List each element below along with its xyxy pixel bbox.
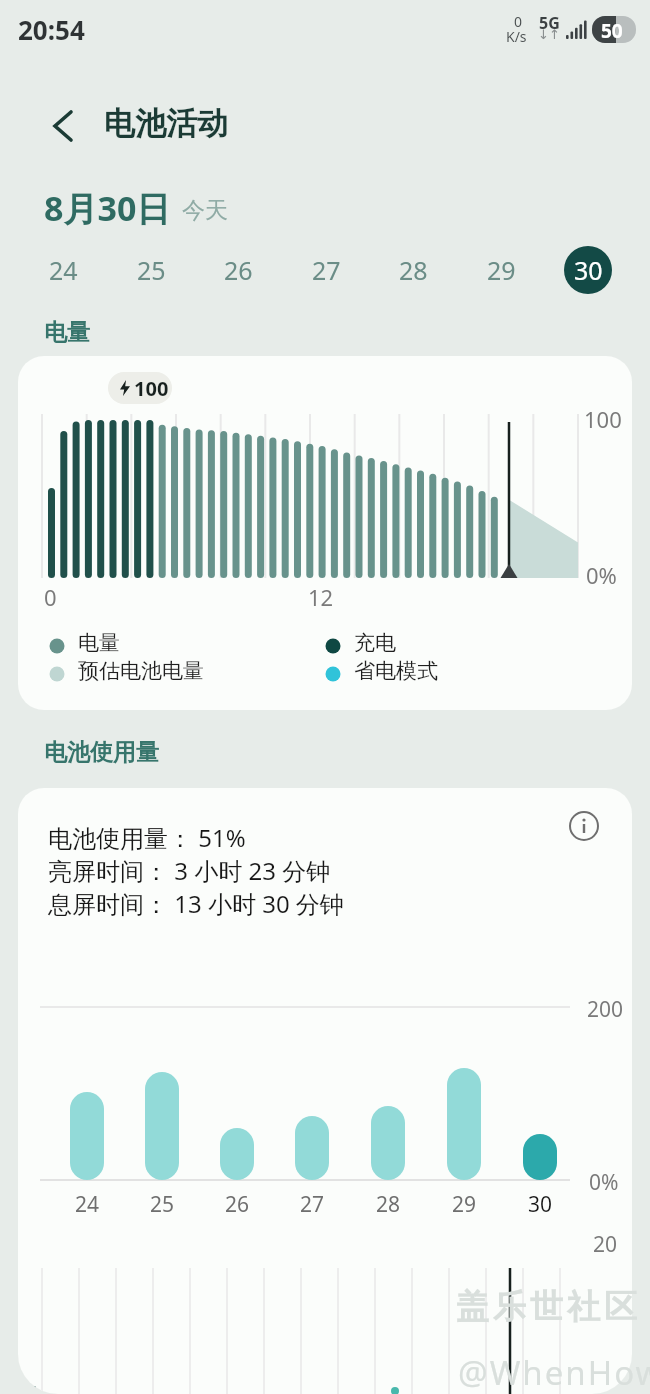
- button[interactable]: 29: [477, 246, 525, 294]
- staticText: 电池活动: [104, 104, 228, 143]
- staticText: 25: [150, 1190, 175, 1219]
- staticText: 24: [75, 1190, 100, 1219]
- staticText: 27: [312, 253, 341, 287]
- staticText: 亮屏时间： 3 小时 23 分钟: [48, 854, 331, 887]
- staticText: 电量: [44, 318, 90, 347]
- staticText: 27: [300, 1190, 325, 1219]
- button[interactable]: 27: [302, 246, 350, 294]
- staticText: 30: [574, 253, 603, 287]
- staticText: 电量: [78, 630, 120, 656]
- staticText: K/s: [506, 27, 527, 46]
- staticText: 25: [137, 253, 166, 287]
- button[interactable]: 28: [389, 246, 437, 294]
- staticText: 26: [224, 253, 253, 287]
- staticText: 息屏时间： 13 小时 30 分钟: [48, 887, 344, 920]
- staticText: 0: [44, 582, 57, 612]
- staticText: 24: [49, 253, 78, 287]
- button[interactable]: 24: [39, 246, 87, 294]
- staticText: 29: [452, 1190, 477, 1219]
- staticText: 20:54: [18, 12, 85, 47]
- staticText: 50: [601, 18, 623, 43]
- staticText: 0: [514, 12, 523, 31]
- staticText: 12: [308, 582, 334, 612]
- staticText: 预估电池电量: [78, 658, 204, 684]
- staticText: 今天: [182, 196, 228, 225]
- button[interactable]: 30: [564, 246, 612, 294]
- staticText: 28: [376, 1190, 401, 1219]
- staticText: 8月30日: [44, 185, 171, 231]
- staticText: ↓↑: [538, 27, 560, 42]
- button[interactable]: 26: [214, 246, 262, 294]
- button[interactable]: [36, 100, 88, 152]
- staticText: 盖乐世社区: [454, 1286, 639, 1328]
- staticText: 0%: [589, 1168, 619, 1197]
- staticText: 26: [225, 1190, 250, 1219]
- staticText: 200: [587, 995, 624, 1024]
- staticText: 20: [593, 1230, 618, 1259]
- staticText: 电池使用量： 51%: [48, 821, 246, 854]
- staticText: 省电模式: [354, 658, 438, 684]
- button[interactable]: 25: [127, 246, 175, 294]
- staticText: 100: [134, 375, 169, 402]
- staticText: 0%: [586, 560, 617, 590]
- staticText: 5G: [539, 12, 560, 34]
- staticText: 29: [487, 253, 516, 287]
- button[interactable]: [562, 804, 606, 848]
- staticText: 28: [399, 253, 428, 287]
- staticText: 电池使用量: [44, 738, 159, 767]
- staticText: @WhenHow: [458, 1350, 650, 1394]
- staticText: 100: [584, 404, 622, 434]
- staticText: 30: [528, 1190, 553, 1219]
- staticText: 充电: [354, 630, 396, 656]
